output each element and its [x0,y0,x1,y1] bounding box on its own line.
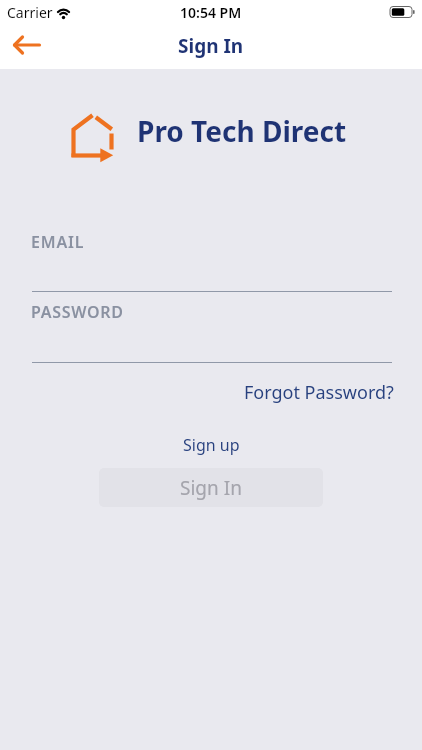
staticText: Forgot Password? [244,380,394,405]
button[interactable]: Sign In [99,468,323,507]
button[interactable] [32,301,392,363]
button[interactable]: Forgot Password? [244,380,394,405]
staticText: Sign up [183,434,240,456]
staticText: Sign In [180,475,242,501]
staticText: Pro Tech Direct [137,112,347,150]
staticText: PASSWORD [31,301,124,323]
staticText: Carrier [7,3,53,22]
staticText: 10:54 PM [180,3,242,22]
staticText: EMAIL [31,231,85,253]
staticText: Sign In [178,33,244,59]
button[interactable]: Sign up [183,434,240,456]
button[interactable] [32,231,392,292]
button[interactable] [6,27,46,63]
